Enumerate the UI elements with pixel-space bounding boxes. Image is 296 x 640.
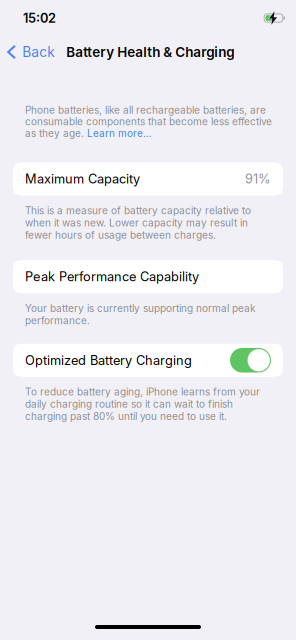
staticText: To reduce battery aging, iPhone learns f… — [25, 386, 260, 422]
staticText: as they age. — [25, 127, 87, 139]
staticText: Battery Health & Charging — [66, 44, 234, 60]
staticText: Phone batteries, like all rechargeable b… — [25, 104, 266, 116]
staticText: 91% — [245, 171, 271, 187]
staticText: Learn more… — [87, 127, 152, 139]
button[interactable]: Back — [0, 37, 61, 67]
button[interactable]: Optimized Battery Charging — [0, 344, 296, 377]
button[interactable]: Learn more… — [87, 127, 152, 139]
staticText: 15:02 — [23, 10, 56, 26]
staticText: consumable components that become less e… — [25, 116, 272, 128]
button[interactable]: Maximum Capacity — [0, 162, 296, 195]
staticText: Maximum Capacity — [25, 171, 140, 187]
button[interactable]: Peak Performance Capability — [0, 260, 296, 293]
staticText: Your battery is currently supporting nor… — [25, 302, 256, 327]
staticText: Optimized Battery Charging — [25, 352, 192, 368]
staticText: Peak Performance Capability — [25, 269, 199, 284]
staticText: This is a measure of battery capacity re… — [25, 204, 251, 241]
staticText: Back — [22, 44, 55, 60]
